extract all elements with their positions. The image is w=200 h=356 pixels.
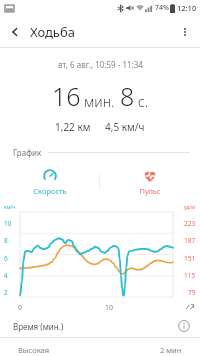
staticText: 4 [4, 271, 8, 280]
staticText: 115 [184, 271, 196, 280]
staticText: Скорость [33, 186, 67, 196]
button[interactable]: More options [170, 17, 200, 47]
staticText: 1,22 км [55, 120, 91, 134]
button[interactable]: Info [176, 318, 192, 334]
button[interactable]: Скорость [0, 161, 99, 203]
button[interactable]: Пульс [100, 161, 200, 203]
button[interactable]: Expand chart [186, 303, 194, 311]
staticText: с. [138, 92, 149, 111]
staticText: Высокая [18, 345, 49, 355]
staticText: 6 [4, 254, 8, 263]
staticText: мин. [84, 92, 115, 111]
staticText: 10 [4, 219, 12, 228]
button[interactable]: Back [0, 17, 30, 47]
staticText: 74% [155, 3, 169, 13]
staticText: уд/м [184, 204, 196, 211]
staticText: 12:10 [177, 3, 197, 13]
staticText: 4,5 км/ч [105, 120, 145, 134]
staticText: 8 [4, 236, 8, 245]
staticText: 223 [184, 219, 196, 228]
staticText: 79 [188, 288, 196, 297]
staticText: вт, 6 авг., 10:59 - 11:34 [58, 59, 143, 70]
staticText: Пульс [139, 186, 161, 196]
staticText: 2 мин [160, 345, 182, 355]
staticText: 187 [184, 236, 196, 245]
staticText: Время (мин.) [13, 321, 64, 332]
staticText: 2 [4, 288, 8, 297]
staticText: 8 [120, 79, 135, 113]
staticText: км/ч [4, 204, 16, 211]
staticText: Ходьба [30, 23, 75, 41]
staticText: 151 [184, 254, 196, 263]
staticText: 0 [18, 303, 23, 313]
staticText: 16 [52, 79, 81, 113]
staticText: 10 [105, 303, 114, 313]
staticText: График [13, 147, 42, 158]
